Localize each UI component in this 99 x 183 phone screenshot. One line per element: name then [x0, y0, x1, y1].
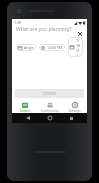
button[interactable]: 7/18/22: [68, 37, 83, 57]
staticText: Community: [41, 109, 59, 113]
staticText: What are you planning?: [16, 26, 72, 33]
staticText: 12:00 PM: [47, 45, 63, 50]
button[interactable]: Events: [12, 101, 37, 113]
button[interactable]: Close: [75, 29, 84, 38]
button[interactable]: 12:00 PM: [39, 44, 65, 51]
button[interactable]: Back: [23, 113, 33, 123]
staticText: 7/18/22: [76, 38, 81, 56]
button[interactable]: CREATE: [15, 89, 84, 98]
button[interactable]: Home: [45, 113, 55, 123]
staticText: Events: [20, 109, 30, 113]
button[interactable]: Community: [37, 101, 62, 113]
button[interactable]: Settings: [62, 101, 87, 113]
staticText: Settings: [68, 109, 81, 113]
button[interactable]: Angie: [16, 44, 36, 51]
staticText: 1:30: [14, 20, 21, 25]
button[interactable]: Recents: [66, 113, 76, 123]
staticText: CREATE: [42, 91, 57, 96]
staticText: Angie: [24, 45, 34, 50]
